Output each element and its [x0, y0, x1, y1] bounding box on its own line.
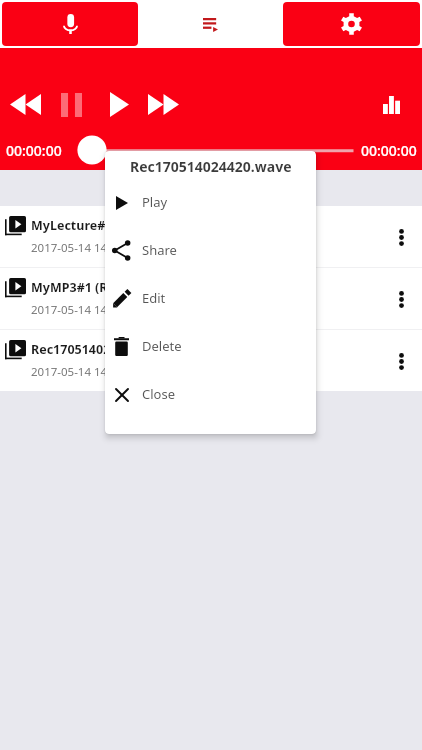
- staticText: Share: [142, 241, 177, 259]
- button[interactable]: More options: [381, 269, 421, 330]
- staticText: Play: [142, 193, 168, 211]
- button[interactable]: Delete: [105, 322, 316, 370]
- button[interactable]: Rec170514024420.wave: [0, 330, 422, 391]
- button[interactable]: Play: [105, 178, 316, 226]
- button[interactable]: Playlist: [142, 2, 279, 46]
- button[interactable]: Record: [2, 2, 138, 46]
- staticText: 00:00:00: [361, 141, 417, 160]
- button[interactable]: Forward: [139, 80, 188, 129]
- button[interactable]: Edit: [105, 274, 316, 322]
- button[interactable]: Rewind: [1, 80, 50, 129]
- staticText: Close: [142, 385, 175, 403]
- button[interactable]: Close: [105, 370, 316, 418]
- staticText: Edit: [142, 289, 166, 307]
- staticText: Rec170514024420.wave: [31, 341, 176, 358]
- button[interactable]: Settings: [283, 2, 420, 46]
- button[interactable]: Play: [95, 80, 144, 129]
- staticText: MyMP3#1 (Rec1705...): [31, 279, 165, 296]
- button[interactable]: More options: [381, 331, 421, 392]
- staticText: MyLecture#1 (Rec...): [31, 217, 157, 234]
- button[interactable]: MyMP3#1 (Rec1705...): [0, 268, 422, 329]
- staticText: 2017-05-14 14:20:01: [31, 302, 140, 318]
- button[interactable]: Equalizer: [367, 80, 416, 129]
- staticText: 00:00:00: [6, 141, 62, 160]
- button[interactable]: Pause: [47, 80, 96, 129]
- staticText: 2017-05-14 14:22:15: [31, 240, 140, 256]
- staticText: Delete: [142, 337, 182, 355]
- button[interactable]: Share: [105, 226, 316, 274]
- staticText: 2017-05-14 14:18:45: [31, 364, 140, 380]
- button[interactable]: MyLecture#1 (Rec...): [0, 206, 422, 267]
- staticText: Rec170514024420.wave: [130, 157, 292, 176]
- button[interactable]: More options: [381, 207, 421, 268]
